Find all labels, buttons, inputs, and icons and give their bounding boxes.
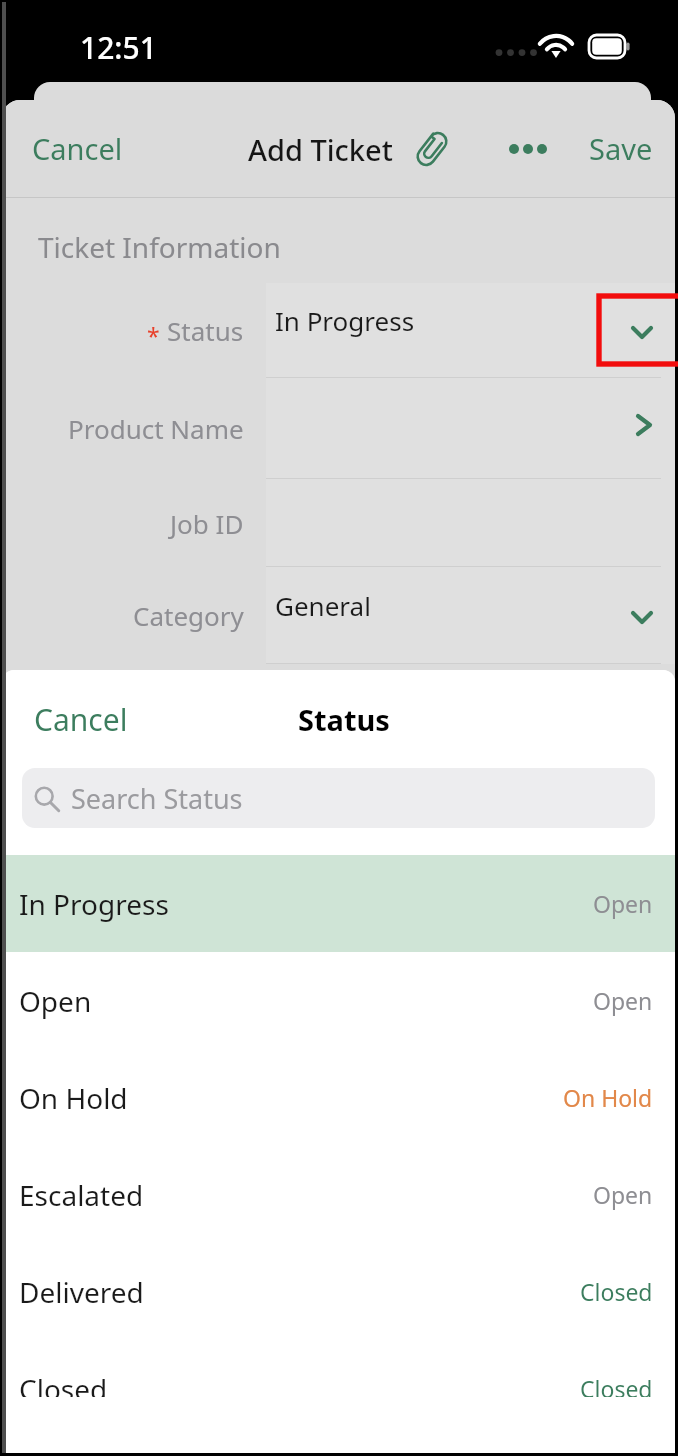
- staticText: Status: [167, 313, 244, 348]
- staticText: Status: [298, 700, 390, 739]
- button[interactable]: Closed: [2, 1340, 675, 1397]
- button[interactable]: Escalated: [2, 1146, 675, 1243]
- button[interactable]: Attach file: [409, 126, 455, 172]
- staticText: Open: [19, 982, 92, 1020]
- staticText: Cancel: [34, 699, 128, 740]
- staticText: Closed: [580, 1276, 653, 1307]
- staticText: Delivered: [19, 1273, 144, 1311]
- button[interactable]: *: [2, 283, 675, 378]
- staticText: In Progress: [19, 885, 169, 923]
- staticText: Closed: [580, 1373, 653, 1397]
- button[interactable]: Product Name: [2, 378, 675, 479]
- staticText: Open: [593, 888, 653, 919]
- button[interactable]: On Hold: [2, 1049, 675, 1146]
- button[interactable]: Job ID: [2, 479, 675, 567]
- button[interactable]: More options: [499, 124, 557, 174]
- button[interactable]: Delivered: [2, 1243, 675, 1340]
- staticText: 12:51: [80, 27, 157, 68]
- staticText: Open: [593, 985, 653, 1016]
- button[interactable]: Cancel: [2, 679, 160, 760]
- staticText: Add Ticket: [248, 130, 393, 169]
- staticText: Save: [589, 129, 653, 168]
- staticText: Escalated: [19, 1176, 144, 1214]
- staticText: Closed: [19, 1370, 108, 1397]
- staticText: Search Status: [71, 780, 243, 817]
- staticText: Ticket Information: [38, 228, 281, 266]
- button[interactable]: Search Status: [22, 768, 655, 828]
- staticText: In Progress: [275, 303, 415, 338]
- staticText: Open: [593, 1179, 653, 1210]
- button[interactable]: Cancel: [2, 107, 157, 190]
- staticText: On Hold: [563, 1082, 653, 1113]
- button[interactable]: Category: [2, 567, 675, 664]
- button[interactable]: Open: [2, 952, 675, 1049]
- staticText: *: [147, 320, 160, 351]
- staticText: Product Name: [68, 411, 244, 446]
- staticText: Job ID: [170, 506, 244, 541]
- button[interactable]: In Progress: [2, 855, 675, 952]
- button[interactable]: Save: [563, 107, 675, 190]
- staticText: Cancel: [32, 129, 123, 168]
- staticText: Category: [133, 598, 244, 633]
- staticText: General: [275, 588, 371, 623]
- staticText: On Hold: [19, 1079, 128, 1117]
